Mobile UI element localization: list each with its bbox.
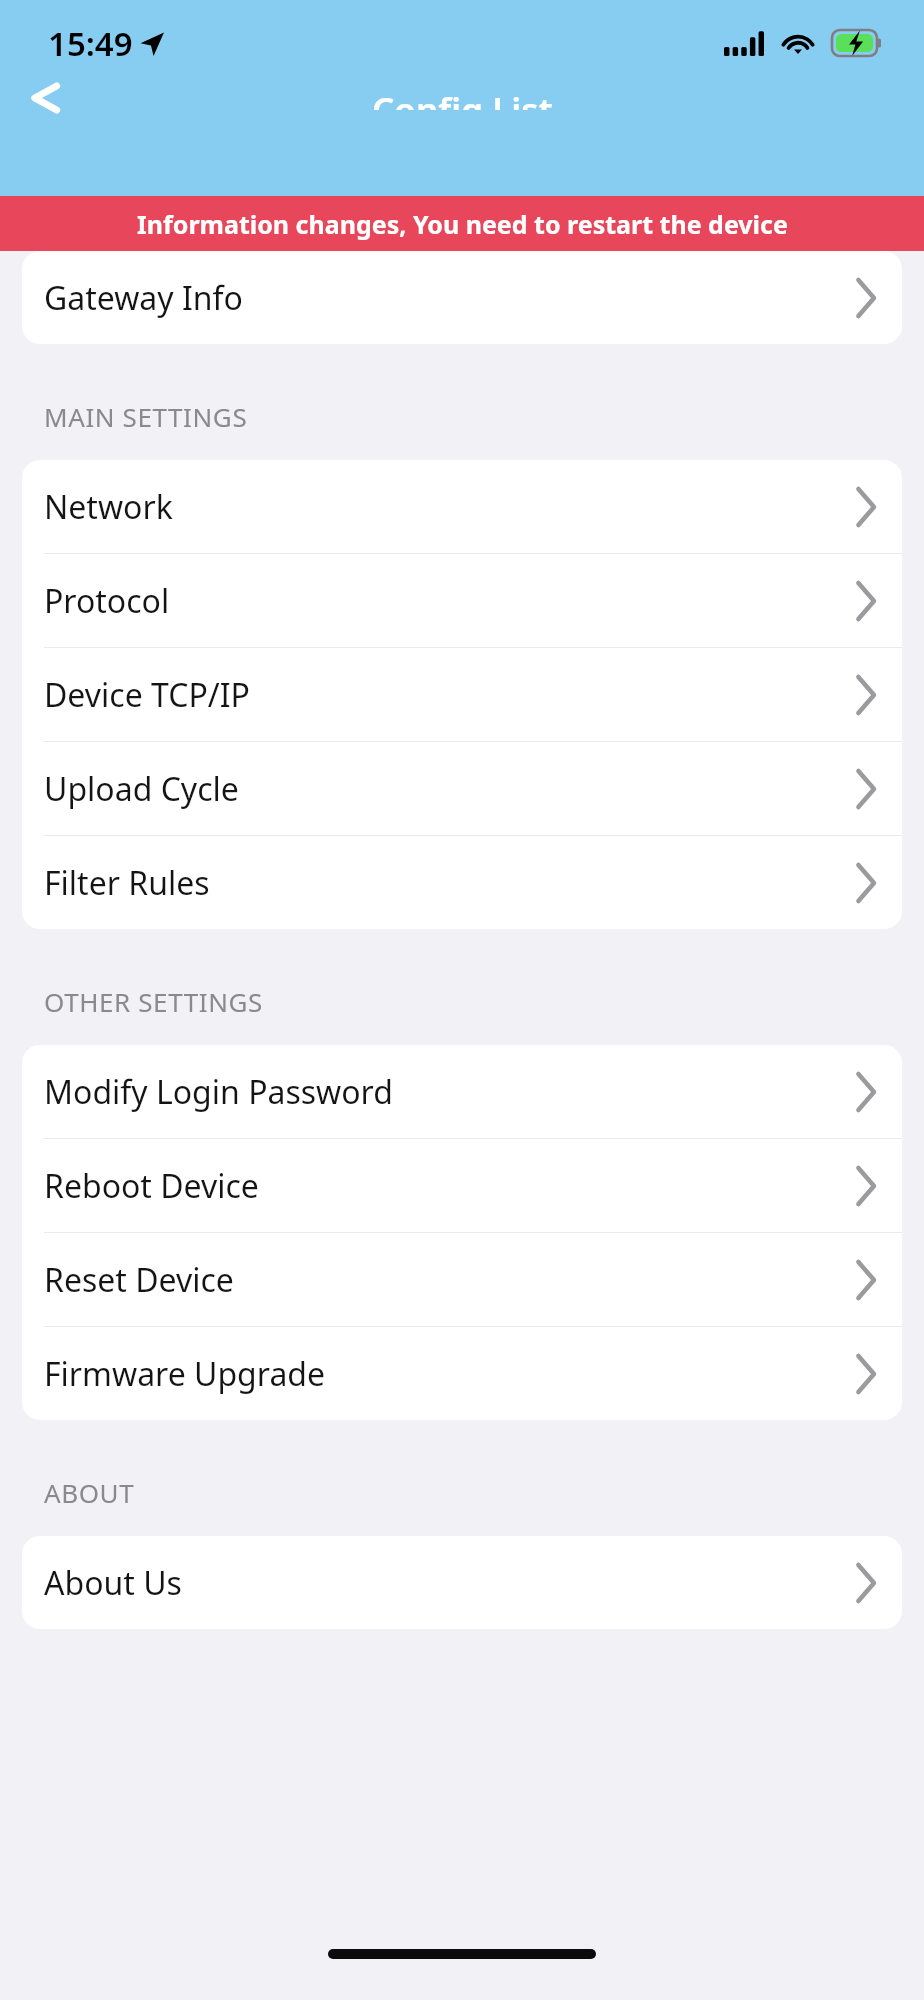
staticText: Information changes, You need to restart… xyxy=(137,207,788,241)
button[interactable]: Upload Cycle xyxy=(22,742,902,835)
staticText: Config List xyxy=(372,86,553,110)
staticText: About Us xyxy=(44,1561,856,1605)
staticText: Upload Cycle xyxy=(44,767,856,811)
staticText: Modify Login Password xyxy=(44,1070,856,1114)
staticText: 15:49 xyxy=(48,21,133,66)
staticText: Network xyxy=(44,485,856,529)
button[interactable]: Firmware Upgrade xyxy=(22,1327,902,1420)
staticText: Protocol xyxy=(44,579,856,623)
button[interactable]: Protocol xyxy=(22,554,902,647)
button[interactable]: About Us xyxy=(22,1536,902,1629)
staticText: Gateway Info xyxy=(44,276,856,320)
staticText: Reboot Device xyxy=(44,1164,856,1208)
button[interactable]: Gateway Info xyxy=(22,251,902,344)
staticText: OTHER SETTINGS xyxy=(44,984,263,1019)
button[interactable]: Filter Rules xyxy=(22,836,902,929)
staticText: ABOUT xyxy=(44,1475,135,1510)
button[interactable]: Back xyxy=(0,86,92,110)
staticText: Device TCP/IP xyxy=(44,673,856,717)
button[interactable]: Device TCP/IP xyxy=(22,648,902,741)
staticText: MAIN SETTINGS xyxy=(44,399,248,434)
button[interactable]: Network xyxy=(22,460,902,553)
button[interactable]: Reboot Device xyxy=(22,1139,902,1232)
staticText: Reset Device xyxy=(44,1258,856,1302)
staticText: Filter Rules xyxy=(44,861,856,905)
button[interactable]: Modify Login Password xyxy=(22,1045,902,1138)
staticText: Firmware Upgrade xyxy=(44,1352,856,1396)
button[interactable]: Reset Device xyxy=(22,1233,902,1326)
